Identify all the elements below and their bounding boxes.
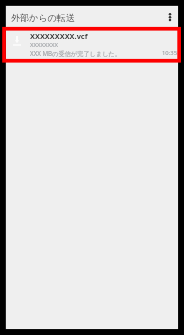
- staticText: XXX MBの受信が完了しました。: [30, 49, 122, 57]
- button[interactable]: More options: [159, 6, 178, 25]
- button[interactable]: XXXXXXXXX.vcf: [6, 27, 178, 64]
- staticText: XXXXXXXXX.vcf: [30, 31, 88, 41]
- staticText: XXXXXXXX: [30, 41, 59, 49]
- staticText: 外部からの転送: [11, 12, 75, 23]
- staticText: 10:35: [162, 49, 178, 57]
